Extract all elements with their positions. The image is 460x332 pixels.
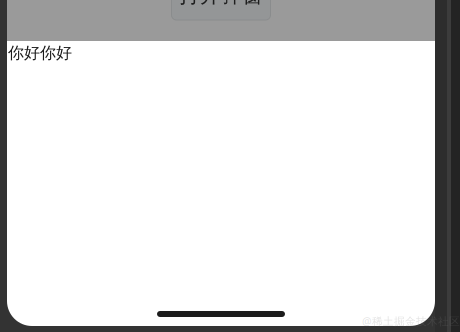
staticText: 打开弹窗 <box>179 0 263 8</box>
staticText: @稀土掘金技术社区 <box>362 314 460 328</box>
button[interactable]: 打开弹窗 <box>171 0 270 20</box>
staticText: 你好你好 <box>8 43 72 63</box>
